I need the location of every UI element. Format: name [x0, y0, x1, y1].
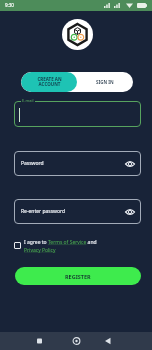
button[interactable]: SIGN IN [77, 72, 133, 92]
staticText: Password [21, 160, 44, 167]
staticText: REGISTER [65, 273, 91, 280]
button[interactable] [14, 151, 141, 176]
staticText: 9:30 [5, 2, 14, 8]
button[interactable]: CREATE AN ACCOUNT [21, 72, 77, 92]
button[interactable] [101, 332, 152, 350]
button[interactable]: REGISTER [15, 267, 141, 285]
button[interactable] [14, 199, 141, 224]
staticText: SIGN IN [96, 79, 114, 85]
button[interactable]: I agree to Terms of Service and Privacy … [14, 239, 97, 253]
staticText: I agree to Terms of Service and Privacy … [24, 239, 97, 253]
button[interactable] [50, 332, 101, 350]
button[interactable] [14, 101, 141, 127]
staticText: Re-enter password [21, 208, 66, 215]
staticText: CREATE AN ACCOUNT [37, 76, 62, 88]
staticText: E-mail [22, 98, 34, 103]
button[interactable] [0, 332, 50, 350]
